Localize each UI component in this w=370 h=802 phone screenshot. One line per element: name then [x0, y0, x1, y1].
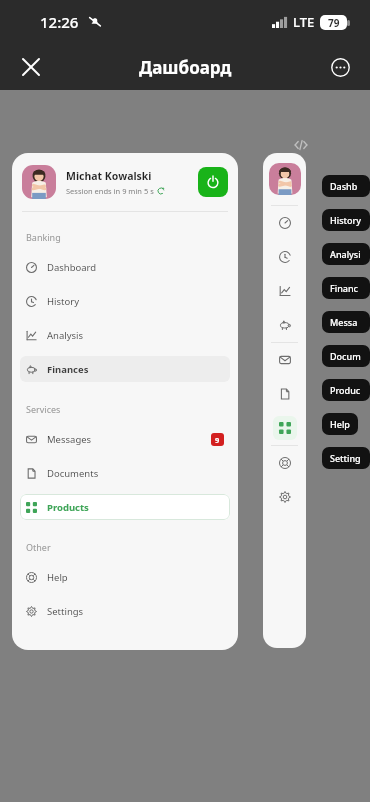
button[interactable]: Documents: [273, 382, 297, 406]
button[interactable]: Dashboard: [322, 175, 370, 197]
button[interactable]: More options: [324, 51, 356, 83]
staticText: Other: [26, 541, 51, 553]
button[interactable]: Dashboard: [20, 254, 230, 280]
button[interactable]: History: [322, 209, 370, 231]
button[interactable]: Products: [273, 416, 297, 440]
staticText: Products: [47, 501, 89, 514]
button[interactable]: Messages: [273, 348, 297, 372]
staticText: Session ends in 9 min 5 s: [66, 186, 154, 196]
staticText: Messages: [330, 316, 362, 328]
staticText: Help: [47, 571, 68, 584]
staticText: 79: [328, 16, 340, 30]
staticText: History: [330, 214, 362, 226]
other: Silent mode: [88, 15, 102, 29]
staticText: LTE: [293, 13, 315, 31]
button[interactable]: Settings: [322, 447, 370, 469]
button[interactable]: Documents: [20, 460, 230, 486]
button[interactable]: Products: [20, 494, 230, 520]
button[interactable]: History: [273, 245, 297, 269]
staticText: Finances: [330, 282, 362, 294]
button[interactable]: Analysis: [20, 322, 230, 348]
button[interactable]: Finances: [20, 356, 230, 382]
staticText: 12:26: [40, 12, 79, 32]
button[interactable]: Messages: [20, 426, 230, 452]
staticText: Analysis: [330, 248, 362, 260]
button[interactable]: Settings: [273, 485, 297, 509]
button[interactable]: Close: [14, 50, 48, 84]
staticText: Banking: [26, 231, 61, 243]
button[interactable]: History: [20, 288, 230, 314]
staticText: Help: [330, 418, 350, 430]
button[interactable]: Analysis: [322, 243, 370, 265]
button[interactable]: Settings: [20, 598, 230, 624]
staticText: Settings: [330, 452, 362, 464]
button[interactable]: Documents: [322, 345, 370, 367]
button[interactable]: Finances: [273, 313, 297, 337]
staticText: Дашбоард: [139, 56, 232, 79]
button[interactable]: Products: [322, 379, 370, 401]
button[interactable]: Dashboard: [273, 211, 297, 235]
button[interactable]: Analysis: [273, 279, 297, 303]
staticText: Finances: [47, 363, 89, 376]
staticText: Products: [330, 384, 362, 396]
button[interactable]: End session: [198, 167, 228, 197]
staticText: 9: [215, 435, 220, 445]
button[interactable]: Help: [273, 451, 297, 475]
button[interactable]: Help: [322, 413, 358, 435]
staticText: Settings: [47, 605, 84, 618]
staticText: Michat Kowalski: [66, 169, 152, 183]
staticText: Services: [26, 403, 61, 415]
staticText: Dashboard: [47, 261, 97, 274]
staticText: Dashboard: [330, 180, 362, 192]
button[interactable]: Finances: [322, 277, 370, 299]
staticText: Documents: [47, 467, 99, 480]
button[interactable]: Help: [20, 564, 230, 590]
staticText: Messages: [47, 433, 92, 446]
staticText: Analysis: [47, 329, 84, 342]
staticText: Documents: [330, 350, 362, 362]
button[interactable]: Messages: [322, 311, 370, 333]
staticText: History: [47, 295, 79, 308]
